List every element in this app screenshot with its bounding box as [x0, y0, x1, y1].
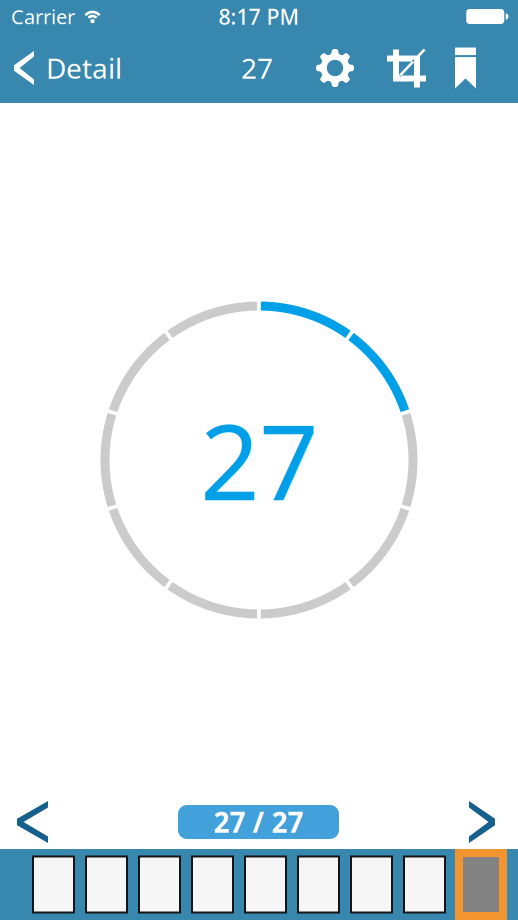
staticText: 27 [200, 391, 318, 529]
button[interactable]: Page 2 [84, 854, 129, 914]
staticText: 27 / 27 [213, 803, 303, 841]
staticText: 8:17 PM [218, 2, 299, 31]
staticText: Carrier [11, 3, 75, 30]
button[interactable]: Page 1 [31, 854, 76, 914]
staticText: Detail [46, 49, 122, 87]
button[interactable]: Page 9 [455, 849, 507, 920]
staticText: 27 [241, 49, 273, 87]
button[interactable]: Page 8 [402, 854, 447, 914]
button[interactable]: Page 3 [137, 854, 182, 914]
button[interactable]: Page 5 [243, 854, 288, 914]
button[interactable]: Detail [0, 49, 130, 87]
button[interactable]: 27 / 27 [178, 805, 339, 839]
button[interactable]: Next page [457, 801, 518, 843]
button[interactable]: Page 6 [296, 854, 341, 914]
button[interactable]: Page 7 [349, 854, 394, 914]
button[interactable]: Bookmark [455, 47, 476, 88]
button[interactable]: 27 [231, 49, 283, 87]
button[interactable]: Page 4 [190, 854, 235, 914]
button[interactable]: Previous page [0, 801, 60, 843]
button[interactable]: Crop [387, 47, 426, 88]
button[interactable]: Settings [316, 49, 354, 87]
